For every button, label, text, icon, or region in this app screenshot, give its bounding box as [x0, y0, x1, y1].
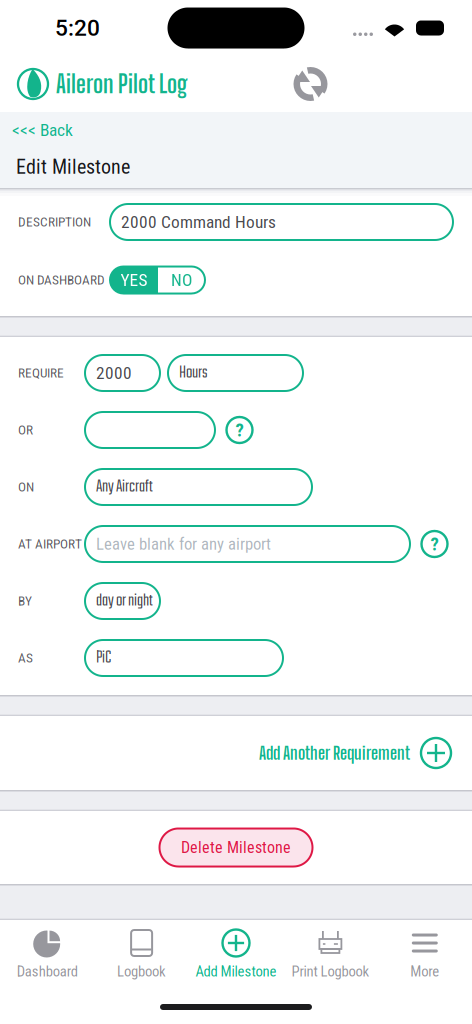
button[interactable]: Help about OR: [225, 415, 254, 444]
staticText: Leave blank for any airport: [96, 534, 271, 554]
button[interactable]: Logbook: [94, 920, 189, 990]
button[interactable]: Aileron Pilot Log: [0, 56, 187, 112]
staticText: YES: [120, 270, 147, 290]
staticText: More: [410, 963, 439, 980]
button[interactable]: Refresh: [282, 56, 338, 112]
staticText: Add Another Requirement: [259, 743, 410, 763]
staticText: PiC: [96, 645, 111, 671]
staticText: Delete Milestone: [181, 838, 291, 857]
staticText: ?: [430, 533, 438, 555]
staticText: Print Logbook: [291, 963, 369, 980]
button[interactable]: Add Milestone: [189, 920, 283, 990]
staticText: REQUIRE: [18, 365, 64, 381]
staticText: Logbook: [117, 963, 166, 980]
button[interactable]: NO: [158, 266, 205, 293]
button[interactable]: Dashboard: [0, 920, 94, 990]
staticText: AT AIRPORT: [18, 536, 82, 552]
staticText: Edit Milestone: [16, 155, 130, 179]
button[interactable]: Print Logbook: [283, 920, 378, 990]
staticText: NO: [171, 270, 192, 290]
staticText: ?: [235, 419, 243, 441]
staticText: 2000 Command Hours: [121, 212, 276, 232]
staticText: AS: [18, 650, 33, 666]
staticText: 2000: [96, 363, 132, 383]
staticText: BY: [18, 593, 32, 609]
staticText: Aileron Pilot Log: [56, 70, 187, 98]
button[interactable]: <<< Back: [0, 112, 73, 148]
button[interactable]: More: [378, 920, 472, 990]
staticText: DESCRIPTION: [18, 214, 91, 230]
staticText: Any Aircraft: [96, 474, 153, 500]
staticText: OR: [18, 422, 33, 438]
button[interactable]: Delete Milestone: [159, 828, 312, 866]
staticText: 5:20: [55, 15, 100, 41]
button[interactable]: YES: [110, 266, 158, 293]
button[interactable]: Help about airport: [420, 529, 449, 558]
staticText: ON: [18, 479, 34, 495]
staticText: <<< Back: [12, 120, 73, 140]
staticText: Dashboard: [17, 963, 78, 980]
staticText: day or night: [96, 588, 153, 614]
staticText: ON DASHBOARD: [18, 272, 105, 288]
staticText: Add Milestone: [195, 963, 276, 980]
button[interactable]: Add Another Requirement: [259, 716, 472, 790]
staticText: Hours: [179, 360, 208, 386]
